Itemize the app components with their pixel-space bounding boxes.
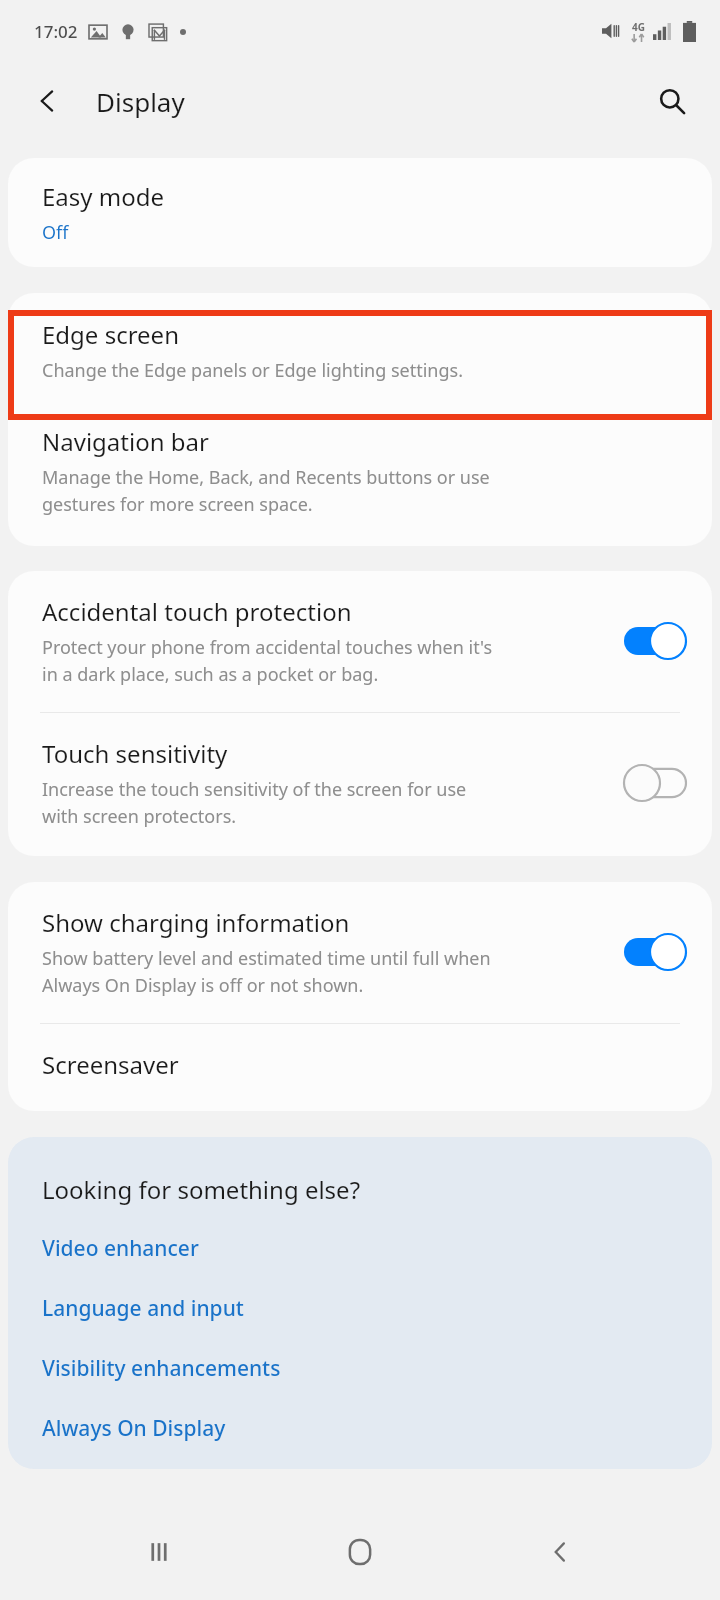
button[interactable]: Easy mode xyxy=(8,158,712,267)
button[interactable]: On xyxy=(624,934,686,970)
button[interactable]: On xyxy=(624,623,686,659)
button[interactable]: Language and input xyxy=(42,1294,244,1323)
staticText: Touch sensitivity xyxy=(42,737,228,770)
staticText: Visibility enhancements xyxy=(42,1354,281,1383)
staticText: Always On Display xyxy=(42,1414,226,1443)
button[interactable]: Visibility enhancements xyxy=(42,1354,281,1383)
staticText: Show battery level and estimated time un… xyxy=(42,946,491,997)
button[interactable]: Always On Display xyxy=(42,1414,226,1443)
staticText: 17:02 xyxy=(34,20,78,43)
button[interactable]: Search xyxy=(644,73,700,129)
staticText: Display xyxy=(96,84,185,119)
button[interactable]: Edge screen xyxy=(8,293,712,407)
staticText: Language and input xyxy=(42,1294,244,1323)
staticText: Looking for something else? xyxy=(42,1173,361,1206)
staticText: Change the Edge panels or Edge lighting … xyxy=(42,358,463,383)
button[interactable]: Show charging information xyxy=(8,882,712,1023)
staticText: Easy mode xyxy=(42,180,165,213)
button[interactable]: Home xyxy=(318,1510,402,1594)
staticText: Edge screen xyxy=(42,318,179,351)
button[interactable]: Accidental touch protection xyxy=(8,571,712,712)
button[interactable]: Back xyxy=(519,1510,603,1594)
staticText: Increase the touch sensitivity of the sc… xyxy=(42,777,467,828)
button[interactable]: Back xyxy=(20,73,76,129)
staticText: Accidental touch protection xyxy=(42,595,352,628)
button[interactable]: Screensaver xyxy=(8,1024,712,1111)
staticText: Protect your phone from accidental touch… xyxy=(42,635,493,686)
staticText: Show charging information xyxy=(42,906,350,939)
button[interactable]: Navigation bar xyxy=(8,407,712,546)
staticText: Manage the Home, Back, and Recents butto… xyxy=(42,465,490,516)
staticText: Screensaver xyxy=(42,1048,179,1081)
staticText: Navigation bar xyxy=(42,425,209,458)
staticText: Off xyxy=(42,220,69,245)
button[interactable]: Video enhancer xyxy=(42,1234,199,1263)
button[interactable]: Off xyxy=(624,765,686,801)
staticText: 4G xyxy=(632,20,645,34)
button[interactable]: Touch sensitivity xyxy=(8,713,712,856)
button[interactable]: Recents xyxy=(117,1510,201,1594)
staticText: Video enhancer xyxy=(42,1234,199,1263)
